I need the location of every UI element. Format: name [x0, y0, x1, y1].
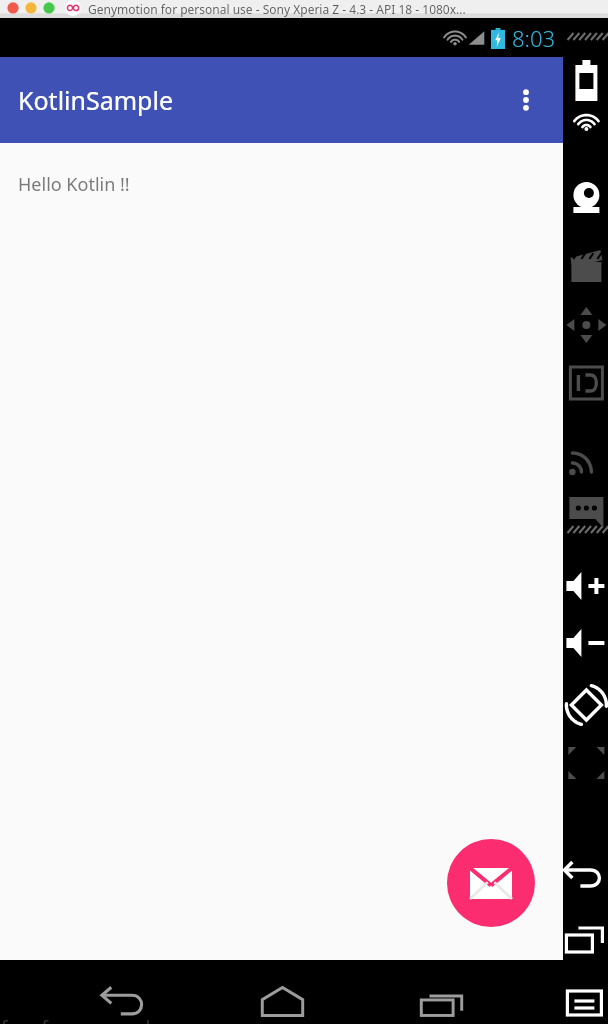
button[interactable]: More options [505, 79, 547, 121]
button[interactable]: Home [244, 963, 320, 1024]
button[interactable]: Back [84, 963, 160, 1024]
staticText: KotlinSample [18, 83, 174, 117]
button[interactable]: Compose email [447, 839, 535, 927]
staticText: Genymotion for personal use - Sony Xperi… [88, 1, 466, 17]
button[interactable]: Recent apps [403, 963, 479, 1024]
staticText: 8:03 [512, 23, 556, 53]
staticText: Hello Kotlin !! [18, 172, 130, 197]
staticText: free for personal use [1, 1015, 187, 1024]
